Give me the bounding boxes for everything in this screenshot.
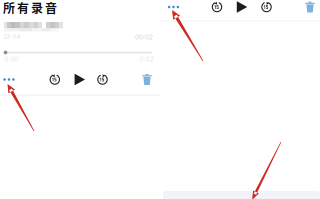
button[interactable]: Play [233,0,251,14]
staticText: 23-04 [3,33,20,40]
button[interactable]: Skip forward 15 seconds [93,72,111,86]
staticText: 00:02 [135,33,153,41]
button[interactable]: More options [0,72,18,86]
button[interactable]: Delete recording [301,0,319,14]
button[interactable]: Skip back 15 seconds [46,72,64,86]
button[interactable]: Play [71,72,89,86]
button[interactable]: Delete recording [138,72,156,86]
button[interactable]: Skip back 15 seconds [208,0,226,14]
staticText: 所有录音 [3,0,57,16]
button[interactable]: Skip forward 15 seconds [257,0,275,14]
staticText: -0:02 [137,56,153,63]
button[interactable]: More options [164,0,182,14]
staticText: 0:00 [4,56,18,63]
